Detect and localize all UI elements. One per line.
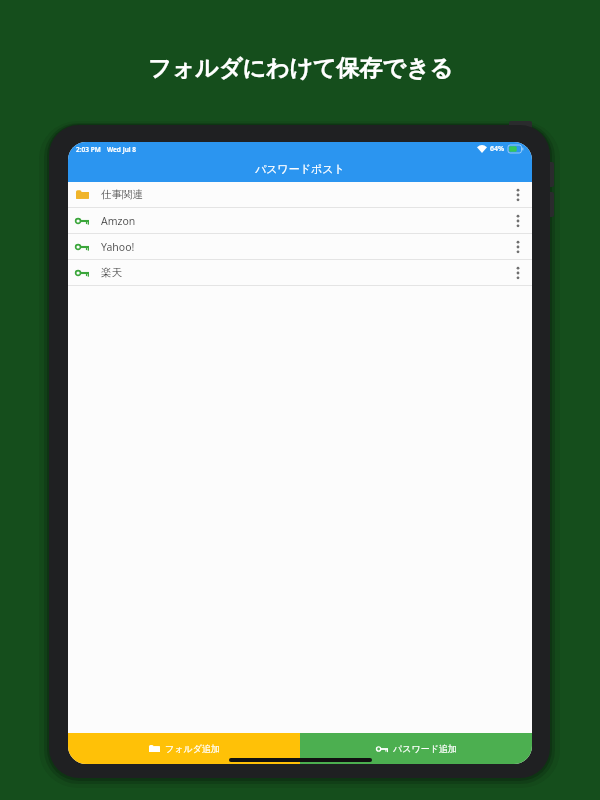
button[interactable]: Amzon: [68, 208, 532, 233]
button[interactable]: パスワード追加: [300, 733, 532, 764]
staticText: パスワードポスト: [255, 162, 345, 176]
staticText: フォルダ追加: [165, 743, 220, 754]
button[interactable]: [516, 240, 520, 254]
button[interactable]: [516, 214, 520, 228]
button[interactable]: [516, 266, 520, 280]
staticText: Yahoo!: [101, 240, 135, 254]
staticText: Wed Jul 8: [107, 145, 137, 154]
staticText: 2:03 PM: [76, 145, 101, 154]
staticText: 仕事関連: [101, 188, 143, 201]
staticText: Amzon: [101, 214, 136, 228]
button[interactable]: 楽天: [68, 260, 532, 285]
staticText: 64%: [490, 144, 505, 154]
button[interactable]: フォルダ追加: [68, 733, 300, 764]
button[interactable]: 仕事関連: [68, 182, 532, 207]
staticText: パスワード追加: [393, 743, 457, 754]
staticText: 楽天: [101, 266, 122, 279]
staticText: フォルダにわけて保存できる: [148, 54, 453, 83]
button[interactable]: Yahoo!: [68, 234, 532, 259]
button[interactable]: [516, 188, 520, 202]
